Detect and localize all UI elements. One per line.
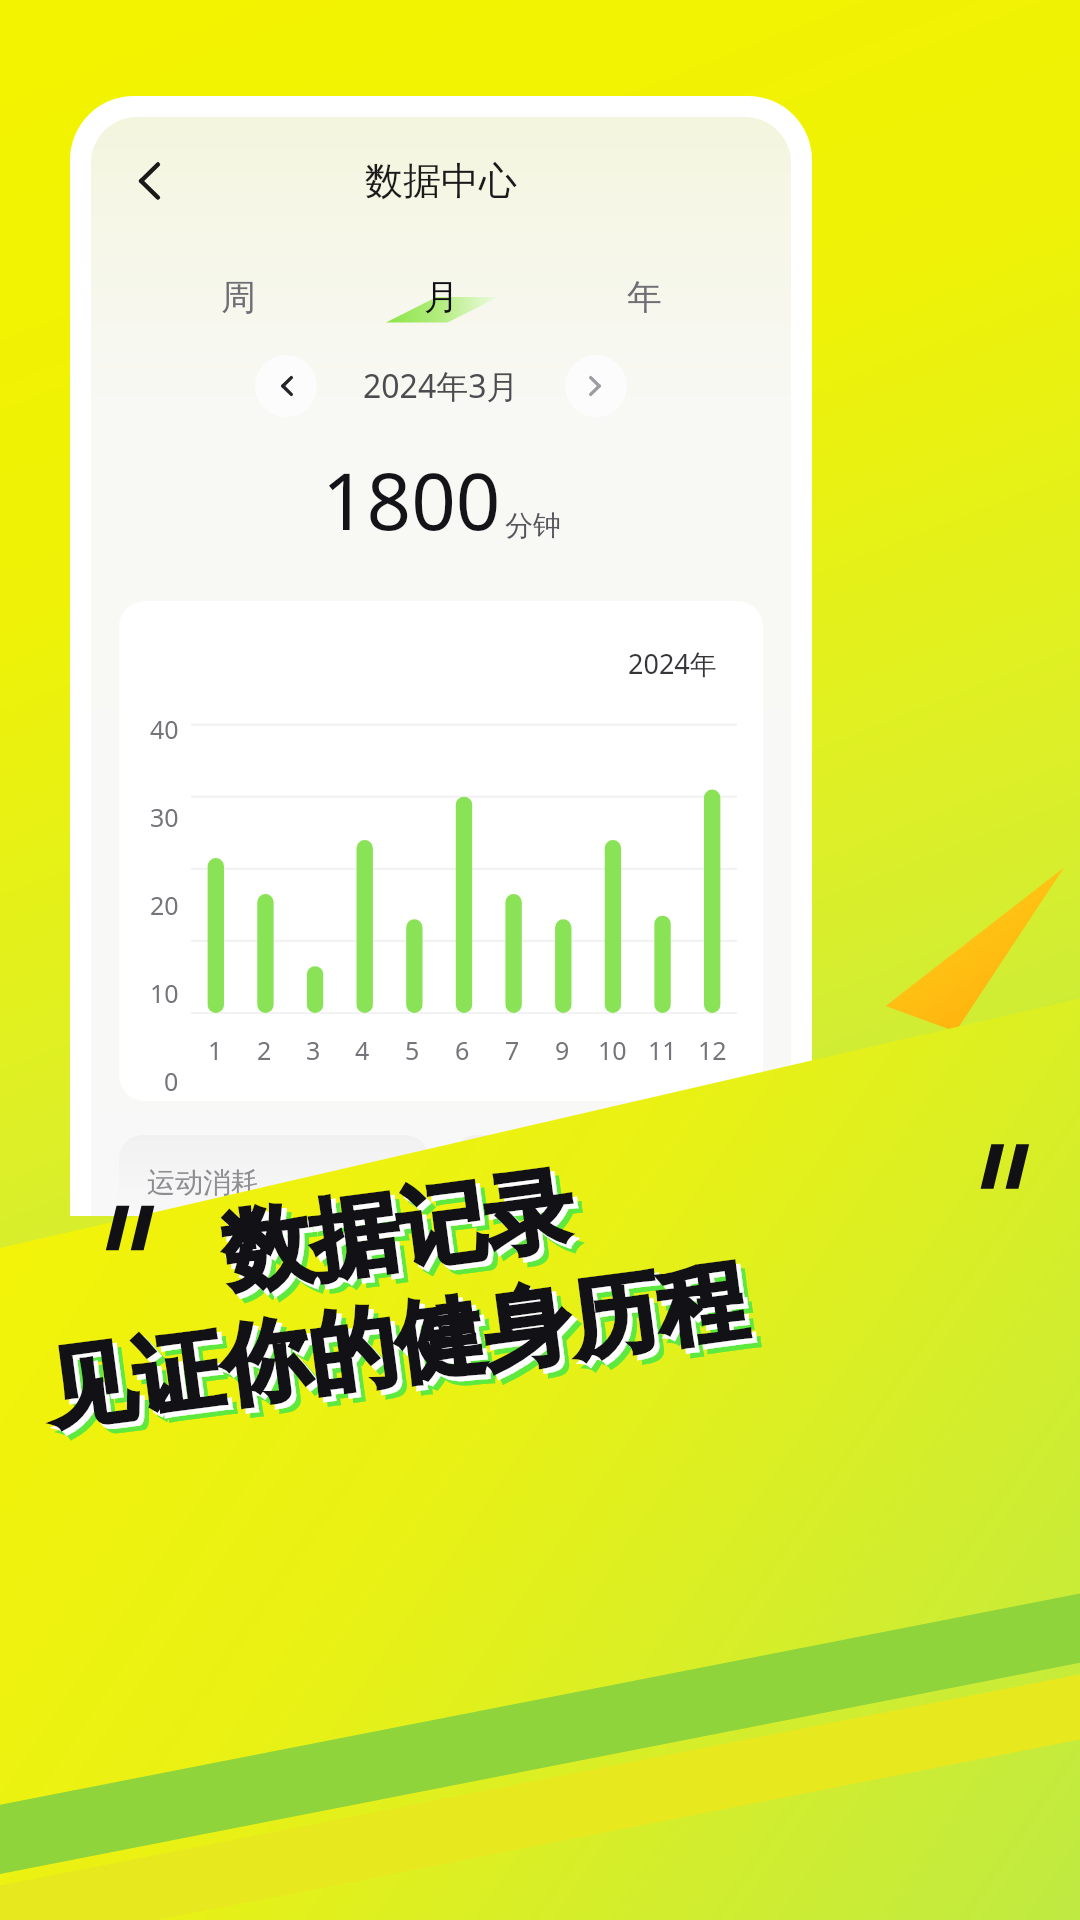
- staticText: 见证你的健身历程: [40, 1244, 752, 1446]
- staticText: 11: [648, 1033, 677, 1067]
- staticText: 30: [150, 800, 179, 834]
- staticText: 年: [627, 275, 662, 319]
- staticText: 见证你的健身历程: [44, 1249, 757, 1451]
- button[interactable]: Next month: [565, 355, 627, 417]
- button[interactable]: 运动时长: [453, 1135, 763, 1216]
- staticText: 周: [221, 275, 256, 319]
- button[interactable]: 周: [183, 265, 293, 329]
- staticText: 数据记录: [216, 1153, 580, 1309]
- staticText: 运动消耗: [147, 1165, 259, 1200]
- staticText: 12: [698, 1033, 727, 1067]
- staticText: 5: [405, 1033, 420, 1067]
- staticText: 6: [455, 1033, 470, 1067]
- staticText: 2: [257, 1033, 272, 1067]
- staticText: 2024年: [628, 645, 717, 682]
- staticText: 1: [208, 1033, 223, 1067]
- staticText: 40: [150, 712, 179, 746]
- button[interactable]: 月: [386, 265, 496, 329]
- staticText: 0: [164, 1064, 179, 1098]
- staticText: 3: [306, 1033, 321, 1067]
- staticText: 10: [598, 1033, 627, 1067]
- staticText: 2024年3月: [363, 364, 519, 408]
- staticText: 10: [150, 976, 179, 1010]
- button[interactable]: 年: [589, 265, 699, 329]
- staticText: 月: [424, 275, 459, 319]
- staticText: 数据中心: [365, 157, 517, 205]
- button[interactable]: 运动消耗: [119, 1135, 429, 1216]
- button[interactable]: Back: [115, 148, 181, 214]
- staticText: 20: [150, 888, 179, 922]
- staticText: 9: [555, 1033, 570, 1067]
- staticText: 1800: [322, 447, 501, 553]
- staticText: 数据记录: [221, 1158, 584, 1314]
- staticText: 分钟: [505, 508, 561, 543]
- button[interactable]: Previous month: [255, 355, 317, 417]
- staticText: 见证你的健身历程: [49, 1253, 761, 1455]
- staticText: 4: [355, 1033, 370, 1067]
- staticText: 数据记录: [225, 1162, 589, 1318]
- staticText: 7: [505, 1033, 520, 1067]
- staticText: 运动时长: [481, 1165, 593, 1200]
